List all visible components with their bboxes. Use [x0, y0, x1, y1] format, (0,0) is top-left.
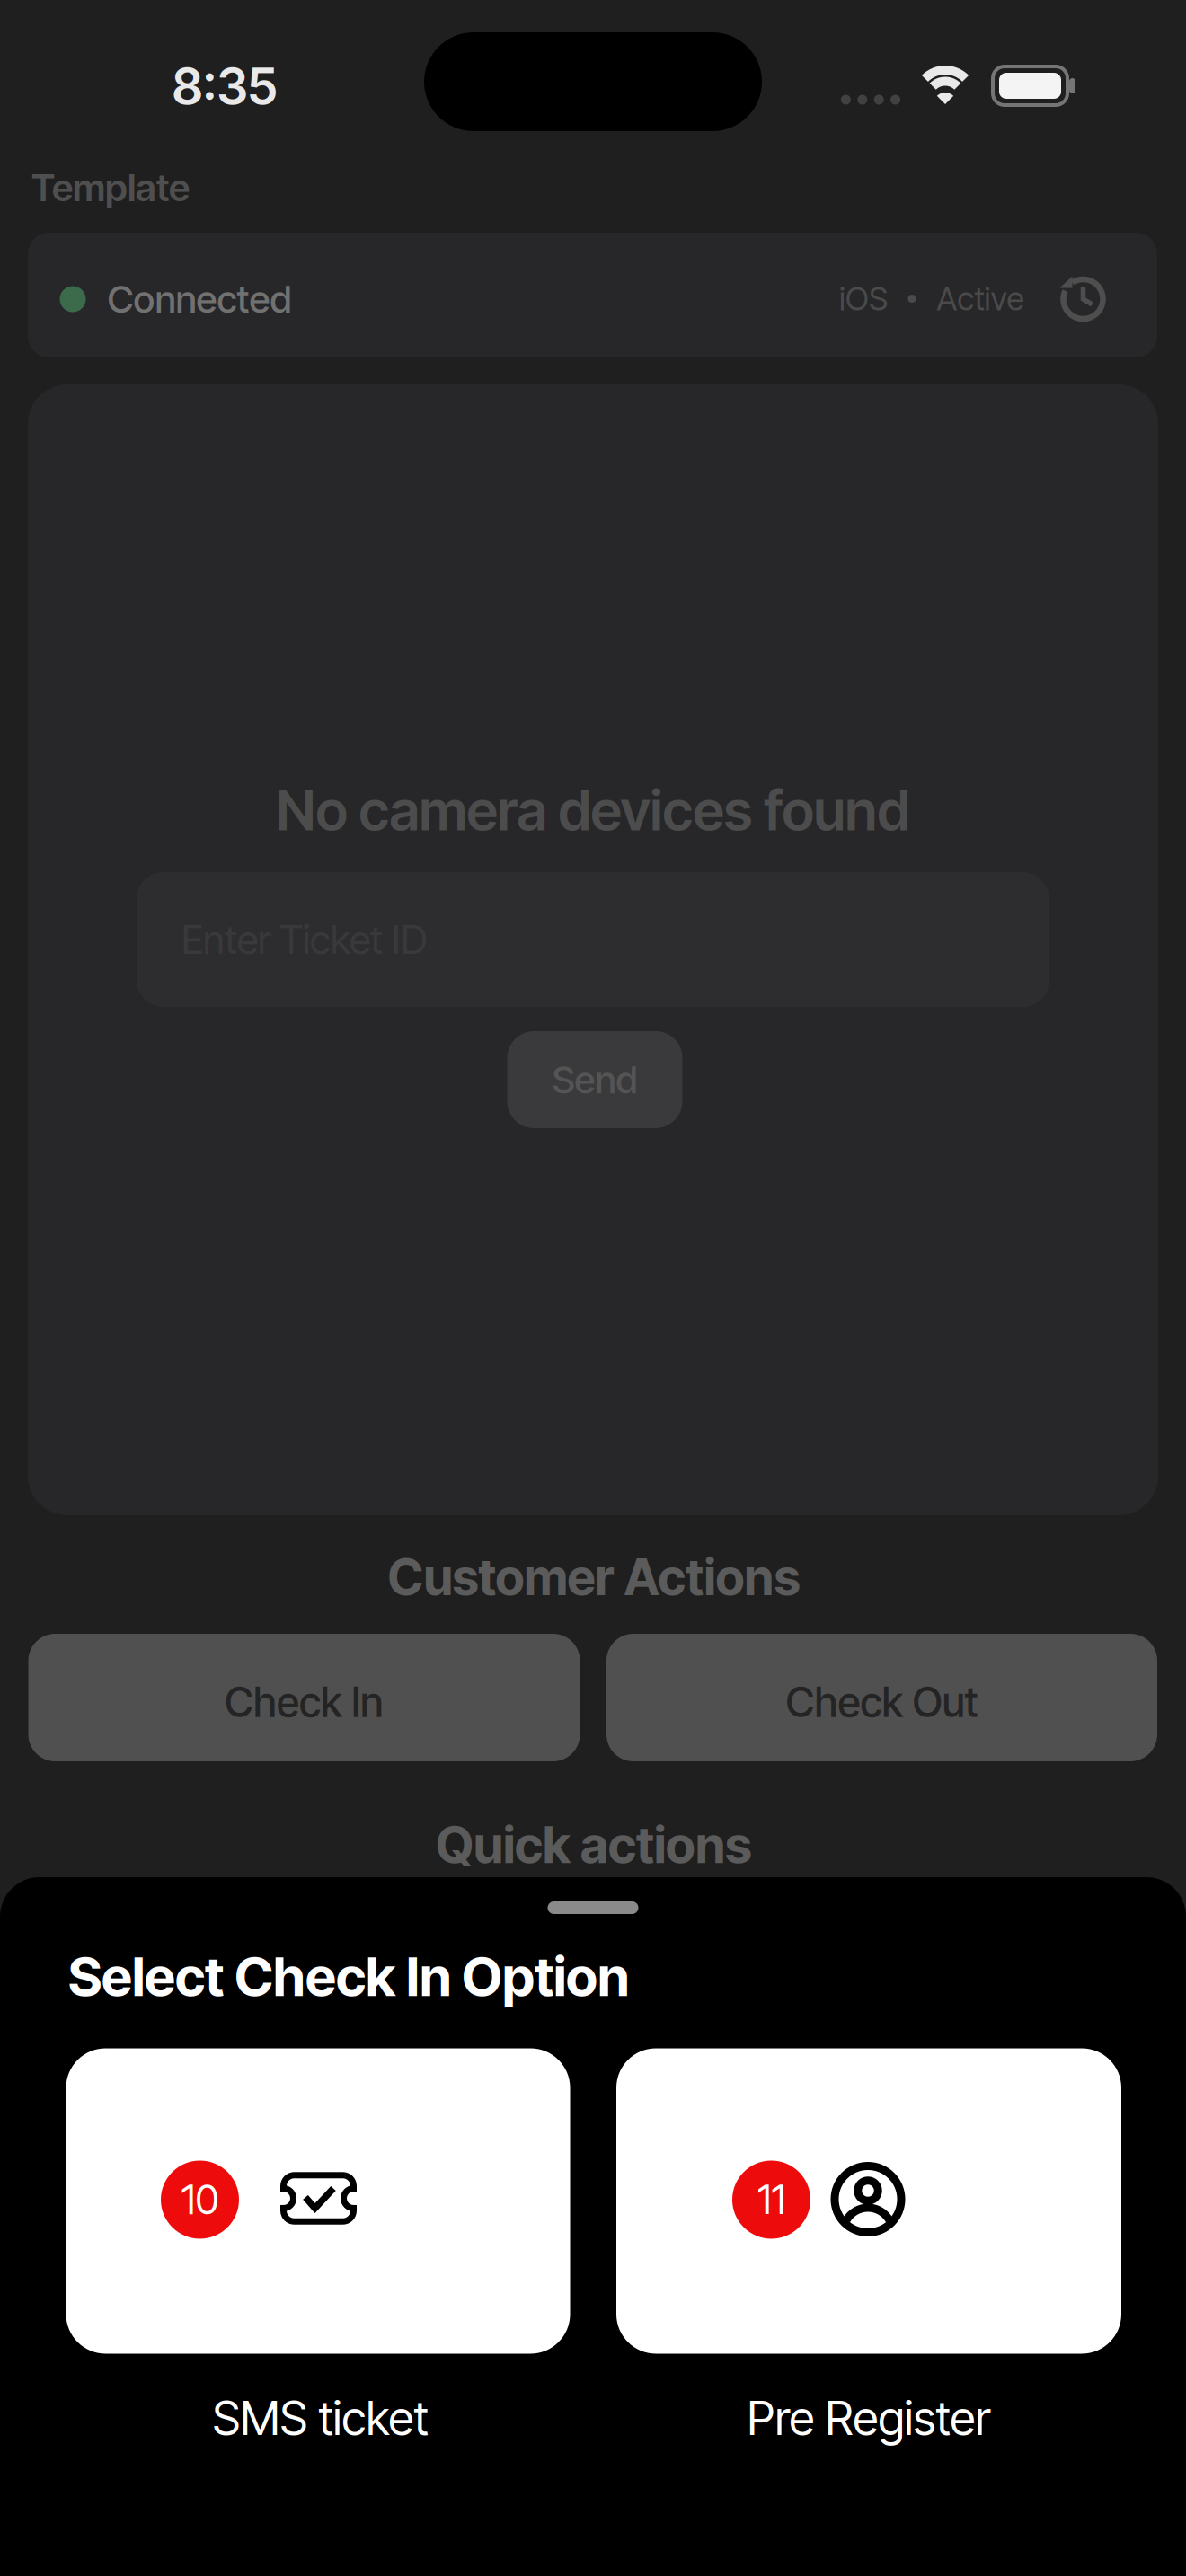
staticText: Customer Actions — [388, 1548, 800, 1606]
staticText: Active — [937, 280, 1024, 318]
staticText: 10 — [181, 2176, 219, 2224]
staticText: 11 — [757, 2176, 786, 2224]
button[interactable]: History — [1058, 274, 1108, 324]
staticText: No camera devices found — [276, 777, 910, 843]
button[interactable]: Send — [507, 1031, 682, 1128]
staticText: Connected — [107, 277, 292, 321]
button[interactable]: Check Out — [606, 1634, 1157, 1761]
staticText: Check In — [225, 1678, 384, 1726]
staticText: Template — [31, 165, 190, 210]
staticText: Send — [552, 1057, 637, 1102]
button[interactable]: SMS ticket — [66, 2048, 570, 2354]
button[interactable]: Pre Register — [616, 2048, 1121, 2354]
staticText: Pre Register — [747, 2390, 991, 2445]
staticText: Check Out — [786, 1678, 978, 1726]
staticText: iOS — [839, 280, 888, 318]
staticText: Enter Ticket ID — [181, 916, 428, 963]
button[interactable]: Check In — [28, 1634, 580, 1761]
staticText: 8:35 — [172, 57, 277, 116]
staticText: SMS ticket — [212, 2390, 428, 2445]
staticText: Select Check In Option — [68, 1945, 629, 2008]
staticText: Quick actions — [436, 1815, 752, 1875]
